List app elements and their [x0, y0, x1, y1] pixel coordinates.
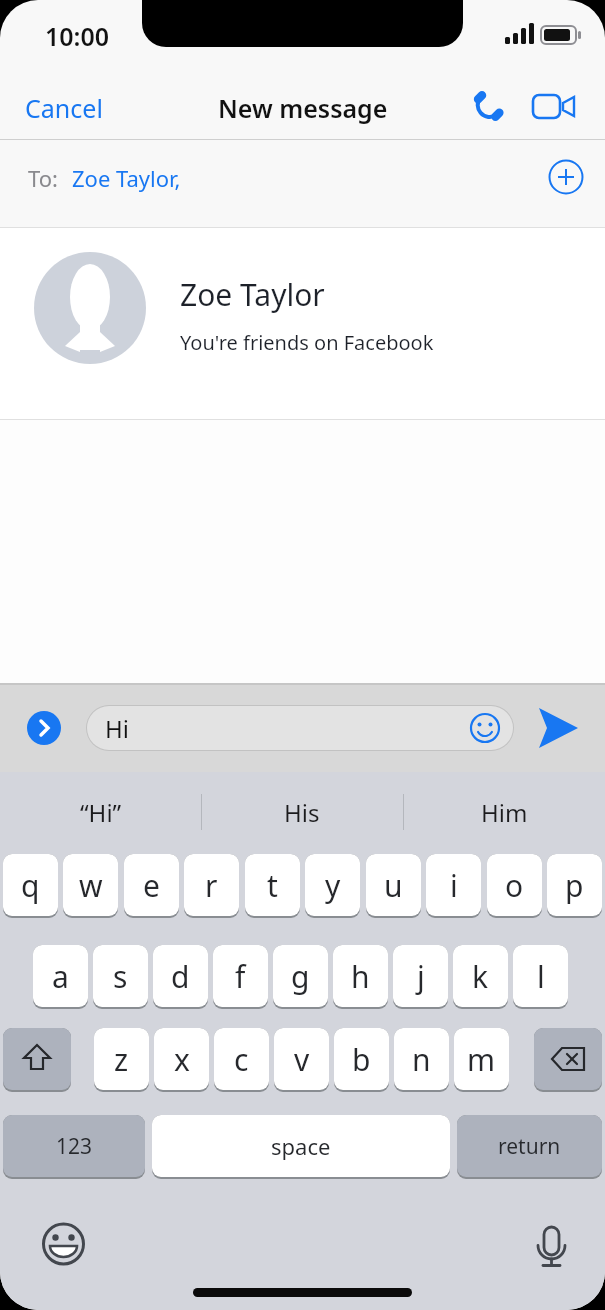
staticText: h: [351, 956, 370, 997]
button[interactable]: Him: [403, 790, 605, 834]
button[interactable]: [468, 86, 508, 126]
button[interactable]: t: [245, 854, 300, 918]
button[interactable]: [532, 1222, 570, 1270]
button[interactable]: b: [334, 1028, 389, 1092]
button[interactable]: y: [305, 854, 360, 918]
staticText: y: [325, 865, 341, 906]
staticText: w: [79, 865, 103, 906]
button[interactable]: n: [394, 1028, 449, 1092]
staticText: Cancel: [25, 91, 103, 125]
staticText: u: [384, 865, 403, 906]
button[interactable]: Hi: [86, 705, 514, 751]
staticText: r: [205, 865, 218, 906]
button[interactable]: r: [184, 854, 239, 918]
button[interactable]: v: [274, 1028, 329, 1092]
button[interactable]: h: [333, 945, 388, 1009]
staticText: t: [267, 865, 278, 906]
button[interactable]: x: [154, 1028, 209, 1092]
button[interactable]: w: [63, 854, 118, 918]
staticText: Zoe Taylor: [180, 274, 325, 315]
button[interactable]: c: [214, 1028, 269, 1092]
staticText: g: [291, 956, 310, 997]
staticText: To:: [28, 163, 58, 193]
button[interactable]: i: [426, 854, 481, 918]
button[interactable]: [534, 1028, 602, 1092]
button[interactable]: k: [453, 945, 508, 1009]
staticText: return: [498, 1132, 561, 1161]
staticText: p: [565, 865, 584, 906]
staticText: k: [472, 956, 489, 997]
staticText: v: [294, 1039, 310, 1080]
staticText: His: [284, 796, 320, 829]
staticText: x: [174, 1039, 190, 1080]
button[interactable]: l: [513, 945, 568, 1009]
button[interactable]: Zoe Taylor: [0, 228, 605, 418]
button[interactable]: “Hi”: [0, 790, 201, 834]
staticText: z: [114, 1039, 129, 1080]
staticText: l: [537, 956, 545, 997]
staticText: i: [450, 865, 458, 906]
staticText: Hi: [105, 712, 129, 745]
staticText: m: [467, 1039, 496, 1080]
button[interactable]: g: [273, 945, 328, 1009]
button[interactable]: q: [3, 854, 58, 918]
button[interactable]: [42, 1222, 86, 1266]
button[interactable]: a: [33, 945, 88, 1009]
button[interactable]: [548, 159, 584, 195]
staticText: j: [417, 956, 425, 997]
button[interactable]: 123: [3, 1115, 145, 1179]
button[interactable]: Cancel: [25, 88, 135, 128]
staticText: New message: [218, 91, 388, 125]
staticText: f: [235, 956, 246, 997]
staticText: o: [505, 865, 524, 906]
button[interactable]: e: [124, 854, 179, 918]
button[interactable]: p: [547, 854, 602, 918]
staticText: d: [171, 956, 190, 997]
staticText: q: [21, 865, 40, 906]
staticText: c: [234, 1039, 249, 1080]
staticText: Zoe Taylor,: [72, 163, 181, 193]
staticText: 10:00: [45, 19, 110, 53]
button[interactable]: d: [153, 945, 208, 1009]
button[interactable]: [534, 704, 582, 752]
staticText: b: [352, 1039, 371, 1080]
staticText: You're friends on Facebook: [180, 329, 434, 356]
button[interactable]: His: [201, 790, 402, 834]
button[interactable]: return: [457, 1115, 602, 1179]
button[interactable]: space: [152, 1115, 450, 1179]
button[interactable]: [3, 1028, 71, 1092]
button[interactable]: u: [366, 854, 421, 918]
button[interactable]: s: [93, 945, 148, 1009]
button[interactable]: [27, 711, 61, 745]
staticText: 123: [56, 1132, 93, 1161]
staticText: space: [271, 1131, 331, 1161]
button[interactable]: o: [487, 854, 542, 918]
button[interactable]: f: [213, 945, 268, 1009]
button[interactable]: j: [393, 945, 448, 1009]
button[interactable]: [530, 90, 580, 126]
staticText: s: [113, 956, 128, 997]
button[interactable]: z: [94, 1028, 149, 1092]
staticText: “Hi”: [80, 796, 122, 829]
staticText: e: [143, 865, 160, 906]
staticText: Him: [481, 796, 528, 829]
staticText: n: [412, 1039, 431, 1080]
button[interactable]: m: [454, 1028, 509, 1092]
staticText: a: [52, 956, 69, 997]
